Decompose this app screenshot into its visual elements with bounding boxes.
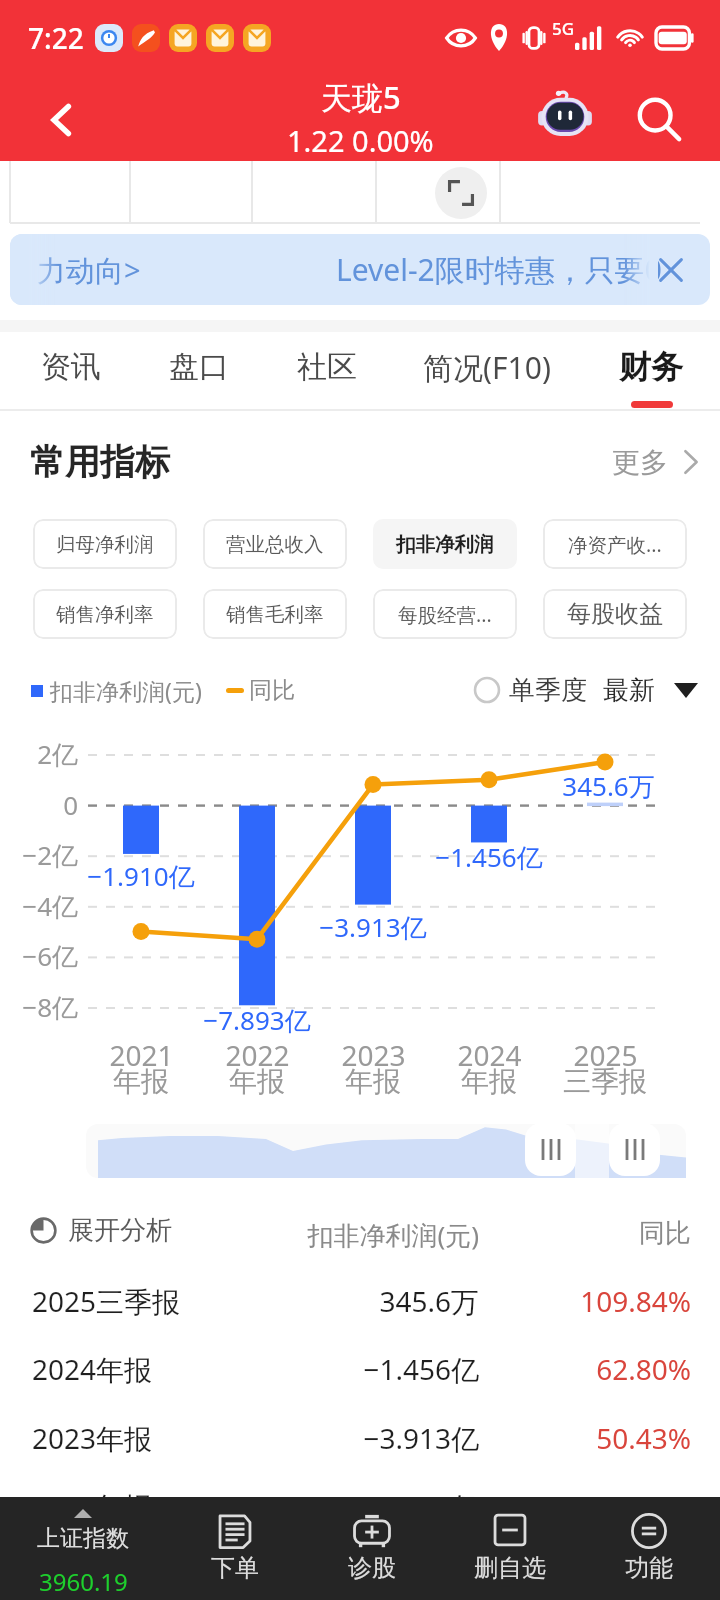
button[interactable]: 展开分析: [30, 1202, 172, 1258]
button[interactable]: 力动向>: [10, 234, 710, 305]
staticText: 0: [63, 787, 78, 822]
staticText: 常用指标: [30, 440, 170, 484]
button[interactable]: 2025三季报: [0, 1264, 720, 1332]
staticText: 资讯: [41, 348, 101, 386]
button[interactable]: 销售毛利率: [203, 589, 347, 639]
button[interactable]: 扣非净利润: [373, 519, 517, 569]
staticText: 2025: [573, 1036, 638, 1074]
staticText: 2022: [225, 1036, 290, 1074]
button[interactable]: 归母净利润: [33, 519, 177, 569]
staticText: 力动向>: [37, 250, 141, 290]
button[interactable]: 每股收益: [543, 589, 687, 639]
staticText: 1.22 0.00%: [287, 121, 434, 160]
staticText: 7:22: [28, 19, 84, 57]
button[interactable]: Search: [622, 82, 696, 156]
button[interactable]: Range end: [609, 1123, 660, 1176]
staticText: 营业总收入: [226, 532, 324, 557]
button[interactable]: Fullscreen chart: [435, 167, 487, 219]
button[interactable]: 财务: [573, 332, 720, 410]
button[interactable]: 2024年报: [0, 1332, 720, 1400]
staticText: 扣非净利润(元): [307, 1217, 479, 1253]
button[interactable]: 销售净利率: [33, 589, 177, 639]
staticText: 同比: [639, 1217, 691, 1250]
staticText: 社区: [297, 348, 357, 386]
staticText: 年报: [229, 1064, 285, 1099]
staticText: 2021: [109, 1036, 174, 1074]
button[interactable]: 简况(F10): [409, 332, 565, 410]
staticText: 扣非净利润(元): [50, 675, 202, 706]
staticText: 2022年报: [32, 1487, 153, 1525]
staticText: 每股收益: [567, 599, 663, 629]
staticText: −8亿: [22, 989, 78, 1025]
staticText: 同比: [249, 676, 295, 705]
staticText: 销售毛利率: [226, 602, 324, 627]
staticText: 展开分析: [68, 1214, 172, 1247]
button[interactable]: 单季度: [474, 666, 587, 714]
staticText: −3.913亿: [363, 1419, 479, 1457]
staticText: −1.456亿: [435, 839, 543, 875]
staticText: 2023年报: [32, 1419, 153, 1457]
button[interactable]: 更多: [612, 427, 715, 497]
staticText: 删自选: [474, 1553, 546, 1583]
button[interactable]: 诊股: [303, 1497, 441, 1600]
staticText: −7.893亿: [203, 1002, 311, 1038]
staticText: 更多: [612, 445, 668, 480]
button[interactable]: AI assistant: [533, 84, 597, 148]
staticText: 年报: [113, 1064, 169, 1099]
staticText: Level-2限时特惠，只要0: [336, 249, 662, 290]
staticText: −1.456亿: [363, 1350, 479, 1388]
button[interactable]: 2023年报: [0, 1401, 720, 1469]
staticText: 最新: [603, 674, 655, 707]
staticText: 5G: [552, 17, 575, 40]
button[interactable]: 功能: [580, 1497, 718, 1600]
staticText: 345.6万: [562, 768, 655, 804]
staticText: 62.80%: [596, 1350, 691, 1388]
staticText: 2025三季报: [32, 1282, 181, 1320]
staticText: 下单: [211, 1553, 259, 1583]
button[interactable]: Back: [22, 80, 102, 160]
staticText: 扣非净利润: [396, 532, 494, 557]
staticText: 销售净利率: [56, 602, 154, 627]
button[interactable]: 下单: [166, 1497, 304, 1600]
staticText: −2亿: [22, 837, 78, 873]
staticText: 盘口: [169, 348, 229, 386]
staticText: −3.913亿: [319, 909, 427, 945]
staticText: −4亿: [22, 888, 78, 924]
button[interactable]: 删自选: [441, 1497, 579, 1600]
staticText: 财务: [619, 347, 683, 387]
staticText: 简况(F10): [423, 347, 551, 388]
button[interactable]: 2022年报: [0, 1469, 720, 1537]
staticText: 年报: [461, 1064, 517, 1099]
staticText: 三季报: [563, 1064, 647, 1099]
staticText: −212.17%: [564, 1487, 691, 1525]
staticText: −1.910亿: [87, 858, 195, 894]
staticText: 净资产收...: [568, 531, 662, 558]
staticText: 年报: [345, 1064, 401, 1099]
staticText: 2亿: [37, 736, 78, 772]
staticText: 单季度: [509, 674, 587, 707]
button[interactable]: 盘口: [121, 332, 277, 410]
staticText: 归母净利润: [56, 532, 154, 557]
button[interactable]: 资讯: [0, 332, 149, 410]
staticText: 50.43%: [596, 1419, 691, 1457]
staticText: 天珑5: [321, 76, 401, 118]
staticText: 345.6万: [379, 1282, 479, 1320]
staticText: 2024: [457, 1036, 522, 1074]
button[interactable]: 社区: [249, 332, 405, 410]
staticText: −6亿: [22, 938, 78, 974]
button[interactable]: 每股经营...: [373, 589, 517, 639]
staticText: 功能: [625, 1553, 673, 1583]
button[interactable]: 净资产收...: [543, 519, 687, 569]
staticText: 上证指数: [37, 1524, 129, 1553]
staticText: 2023: [341, 1036, 406, 1074]
staticText: −7.893亿: [363, 1487, 479, 1525]
staticText: 诊股: [348, 1553, 396, 1583]
staticText: 3960.19: [39, 1565, 128, 1598]
staticText: 2024年报: [32, 1350, 153, 1388]
button[interactable]: Range start: [525, 1123, 576, 1176]
button[interactable]: 最新: [603, 666, 698, 714]
staticText: 每股经营...: [398, 601, 492, 628]
button[interactable]: 营业总收入: [203, 519, 347, 569]
button[interactable]: 上证指数: [0, 1497, 166, 1600]
staticText: 109.84%: [580, 1282, 691, 1320]
